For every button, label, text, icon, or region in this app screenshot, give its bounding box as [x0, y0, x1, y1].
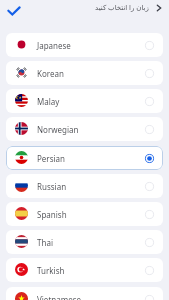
staticText: زبان را انتخاب کنید — [95, 3, 149, 13]
button[interactable]: Back — [153, 2, 164, 13]
button[interactable]: Turkish — [6, 258, 163, 282]
button[interactable]: Spanish — [6, 202, 163, 226]
staticText: Thai — [37, 237, 53, 248]
button[interactable]: Persian — [6, 146, 163, 170]
button[interactable]: Norwegian — [6, 117, 163, 141]
button[interactable]: Korean — [6, 61, 163, 85]
button[interactable]: Vietnamese — [6, 287, 163, 300]
button[interactable]: Malay — [6, 89, 163, 113]
button[interactable]: Done — [4, 1, 23, 20]
button[interactable]: Japanese — [6, 33, 163, 57]
staticText: Spanish — [37, 209, 67, 220]
staticText: Japanese — [37, 40, 71, 51]
staticText: Russian — [37, 181, 67, 192]
staticText: Persian — [37, 153, 65, 164]
button[interactable]: Thai — [6, 230, 163, 254]
button[interactable]: Russian — [6, 174, 163, 198]
staticText: Turkish — [37, 265, 65, 276]
staticText: Norwegian — [37, 124, 79, 135]
staticText: Malay — [37, 96, 60, 107]
staticText: Korean — [37, 68, 64, 79]
staticText: Vietnamese — [37, 294, 82, 300]
